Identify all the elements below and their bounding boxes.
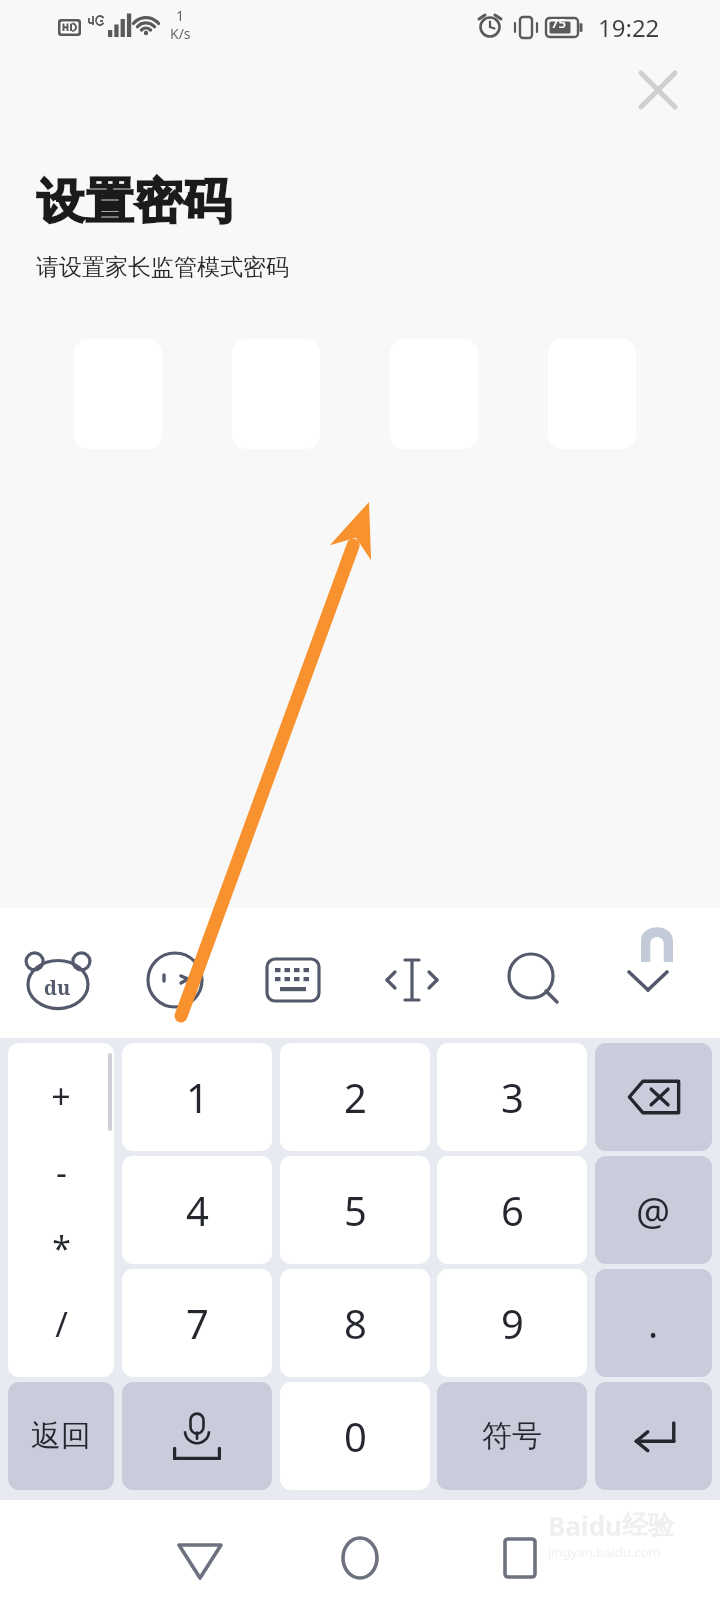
button[interactable]: Close [624,56,692,124]
button[interactable]: 7 [122,1269,272,1377]
button[interactable]: 2 [280,1043,430,1151]
staticText: 2 [344,1070,367,1124]
staticText: 返回 [31,1417,91,1455]
button[interactable]: Baidu input [18,940,98,1020]
button[interactable]: 返回 [8,1382,114,1490]
button[interactable]: Recent apps [480,1518,560,1598]
button[interactable]: 1 [122,1043,272,1151]
button[interactable]: 4 [122,1156,272,1264]
button[interactable]: @ [595,1156,712,1264]
button[interactable]: Home [320,1518,400,1598]
staticText: 符号 [482,1417,542,1455]
staticText: 1 [176,6,185,25]
button[interactable]: 5 [280,1156,430,1264]
button[interactable]: Space / voice input [122,1382,272,1490]
staticText: 5 [344,1183,367,1237]
button[interactable]: 6 [437,1156,587,1264]
staticText: 1 [186,1070,209,1124]
button[interactable]: Move cursor [372,940,452,1020]
button[interactable]: . [595,1269,712,1377]
button[interactable]: + [8,1043,114,1377]
button[interactable]: 8 [280,1269,430,1377]
button[interactable]: Search [494,940,574,1020]
button[interactable]: 9 [437,1269,587,1377]
staticText: 9 [501,1296,524,1350]
staticText: / [55,1301,68,1347]
staticText: - [56,1149,67,1195]
staticText: + [51,1073,71,1119]
button[interactable]: Backspace [595,1043,712,1151]
button[interactable]: Enter [595,1382,712,1490]
staticText: 0 [344,1409,367,1463]
staticText: K/s [170,24,191,43]
staticText: 请设置家长监管模式密码 [36,253,289,282]
staticText: 6 [501,1183,524,1237]
staticText: Baidu [548,1508,622,1543]
staticText: 75 [551,14,566,32]
button[interactable]: 0 [280,1382,430,1490]
staticText: jingyan.baidu.com [548,1543,661,1561]
staticText: 7 [186,1296,209,1350]
staticText: du [44,974,71,1001]
staticText: 8 [344,1296,367,1350]
button[interactable]: Emoji [135,940,215,1020]
button[interactable]: 符号 [437,1382,587,1490]
staticText: @ [636,1184,671,1236]
button[interactable]: Keyboard layout [253,940,333,1020]
staticText: 4 [186,1183,209,1237]
button[interactable]: 3 [437,1043,587,1151]
staticText: 19:22 [598,11,660,44]
staticText: 设置密码 [36,172,232,232]
staticText: . [648,1297,659,1349]
staticText: * [52,1225,71,1271]
staticText: 3 [501,1070,524,1124]
staticText: 经验 [622,1509,674,1542]
button[interactable]: Hide keyboard [608,940,688,1020]
button[interactable]: Back [160,1518,240,1598]
